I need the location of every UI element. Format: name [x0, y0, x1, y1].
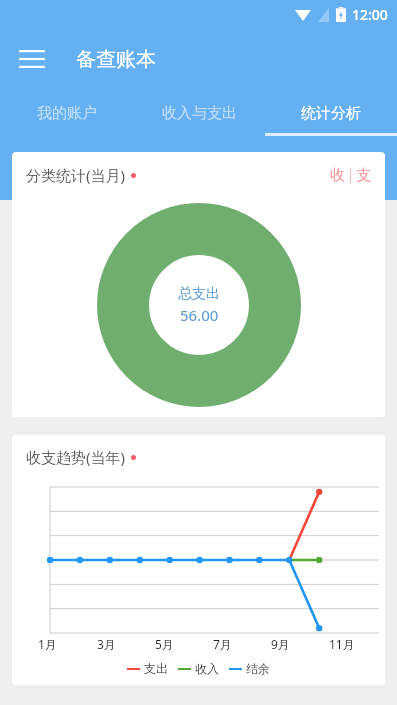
staticText: -40.0	[359, 608, 385, 609]
staticText: 40.0	[363, 511, 385, 512]
staticText: 总支出	[178, 285, 220, 303]
staticText: 56.00	[180, 305, 219, 325]
staticText: 支	[356, 166, 371, 185]
staticText: -20.0	[359, 584, 385, 585]
staticText: 1月	[38, 636, 57, 652]
staticText: 结余	[246, 661, 270, 676]
button[interactable]: 收	[330, 166, 371, 185]
staticText: 我的账户	[37, 104, 97, 123]
button[interactable]: 收入与支出	[133, 90, 265, 136]
staticText: 3月	[97, 636, 116, 652]
button[interactable]: 我的账户	[0, 90, 133, 136]
staticText: 5月	[155, 636, 174, 652]
staticText: 9月	[271, 636, 290, 652]
staticText: 11月	[329, 636, 355, 652]
staticText: 60.0	[363, 487, 385, 488]
staticText: 7月	[213, 636, 232, 652]
staticText: 12:00	[352, 5, 388, 24]
button[interactable]: 收支趋势(当年)	[12, 435, 385, 685]
staticText: 统计分析	[301, 104, 361, 123]
button[interactable]: 统计分析	[265, 90, 397, 136]
staticText: 收支趋势(当年)	[26, 447, 126, 467]
button[interactable]: 分类统计(当月)	[12, 152, 385, 417]
staticText: 分类统计(当月)	[26, 165, 126, 185]
staticText: 备查账本	[76, 47, 156, 72]
staticText: 收	[330, 166, 345, 185]
button[interactable]: Menu	[10, 37, 54, 81]
staticText: 20.0	[363, 535, 385, 536]
staticText: -60.0	[359, 632, 385, 633]
staticText: 0.0	[369, 560, 385, 561]
staticText: 收入与支出	[162, 104, 237, 123]
staticText: 收入	[195, 661, 219, 676]
staticText: 支出	[144, 661, 168, 676]
